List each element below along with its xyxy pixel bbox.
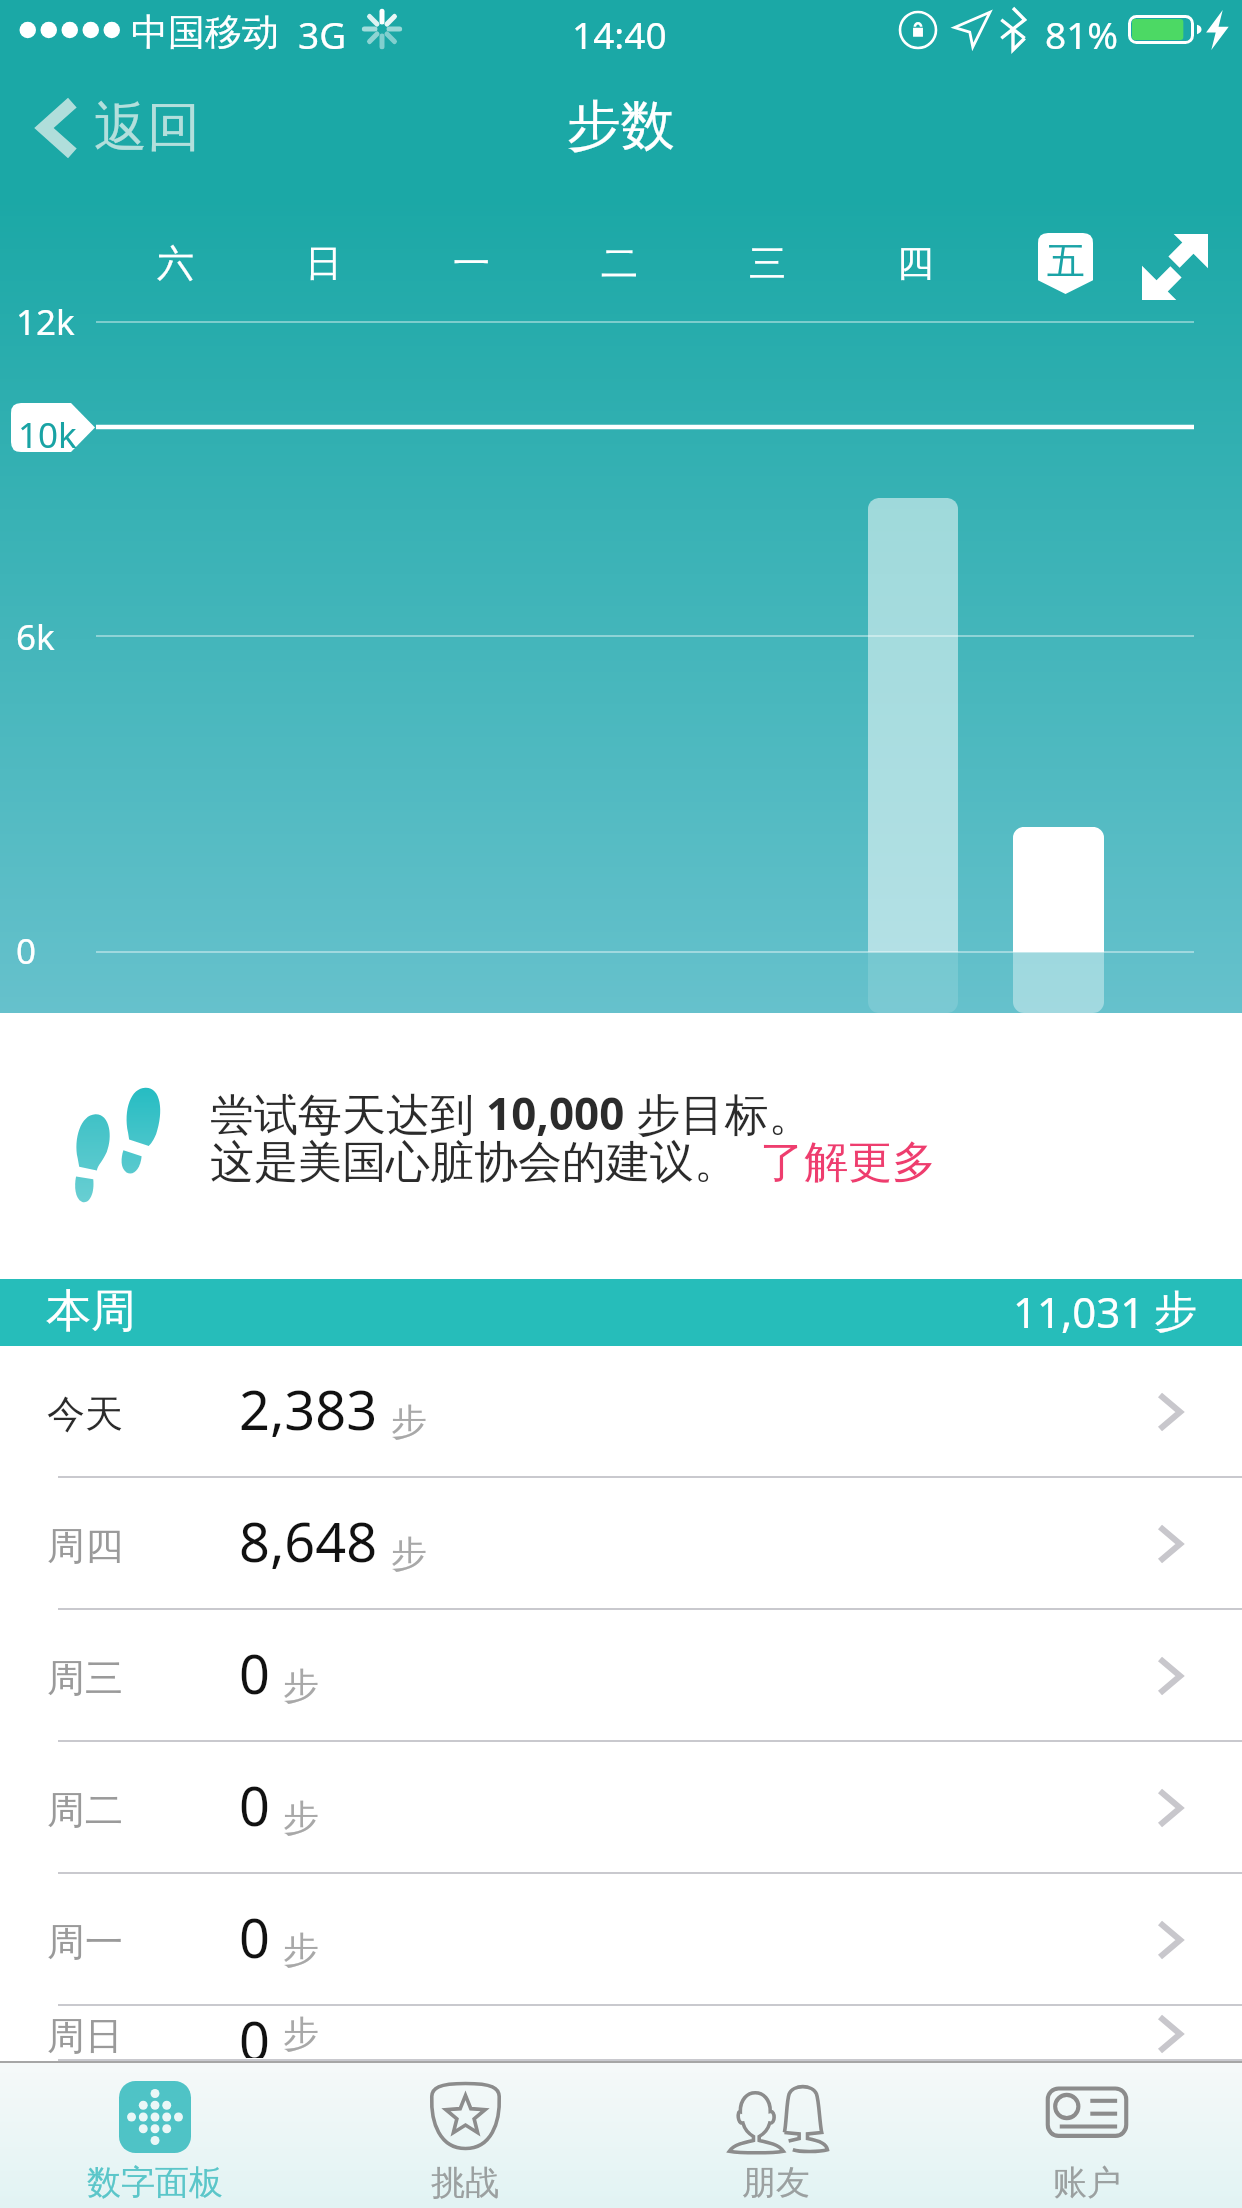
- staticText: 3G: [298, 9, 347, 59]
- staticText: 0: [239, 2003, 270, 2058]
- staticText: 步: [283, 1927, 319, 1972]
- staticText: 10k: [18, 411, 77, 459]
- staticText: 五: [1047, 237, 1085, 285]
- staticText: 步: [283, 1663, 319, 1708]
- button[interactable]: 周日: [0, 2006, 1242, 2061]
- staticText: 0: [16, 927, 37, 975]
- button[interactable]: 周一: [0, 1874, 1242, 2006]
- staticText: 四: [897, 240, 934, 287]
- staticText: 步数: [567, 92, 675, 160]
- button[interactable]: 日: [249, 219, 397, 307]
- staticText: 二: [601, 240, 638, 287]
- button[interactable]: 账户: [931, 2061, 1242, 2208]
- staticText: 六: [157, 240, 194, 287]
- staticText: 了解更多: [760, 1135, 936, 1190]
- button[interactable]: Expand chart: [1140, 232, 1210, 302]
- staticText: 步目标。: [625, 1083, 813, 1143]
- button[interactable]: 周二: [0, 1742, 1242, 1874]
- staticText: 6k: [16, 613, 55, 661]
- staticText: 步: [391, 1531, 427, 1576]
- staticText: 日: [305, 240, 342, 287]
- staticText: 步: [283, 2011, 319, 2056]
- staticText: 返回: [94, 94, 200, 161]
- button[interactable]: 一: [397, 219, 545, 307]
- button[interactable]: 了解更多: [760, 1135, 936, 1190]
- button[interactable]: 数字面板: [0, 2061, 310, 2208]
- button[interactable]: 返回: [18, 84, 224, 171]
- button[interactable]: 挑战: [310, 2061, 620, 2208]
- button[interactable]: 五: [1038, 233, 1093, 294]
- staticText: 0: [239, 1900, 270, 1974]
- staticText: 81%: [1045, 9, 1119, 59]
- staticText: 周四: [47, 1522, 123, 1570]
- staticText: 12k: [16, 298, 75, 346]
- staticText: 今天: [47, 1390, 123, 1438]
- staticText: 2,383: [239, 1372, 378, 1446]
- button[interactable]: 二: [545, 219, 693, 307]
- staticText: 周一: [47, 1918, 123, 1966]
- staticText: 本周: [46, 1283, 136, 1340]
- staticText: 步: [1154, 1285, 1197, 1339]
- staticText: 10,000: [486, 1083, 625, 1143]
- staticText: 尝试每天达到: [210, 1083, 486, 1143]
- button[interactable]: 周四: [0, 1478, 1242, 1610]
- staticText: 中国移动: [131, 9, 279, 56]
- staticText: 步: [283, 1795, 319, 1840]
- staticText: 8,648: [239, 1504, 378, 1578]
- staticText: 周三: [47, 1654, 123, 1702]
- staticText: 朋友: [742, 2161, 810, 2204]
- button[interactable]: 朋友: [620, 2061, 931, 2208]
- staticText: 14:40: [572, 9, 667, 59]
- staticText: 0: [239, 1768, 270, 1842]
- staticText: 挑战: [431, 2161, 499, 2204]
- button[interactable]: 周三: [0, 1610, 1242, 1742]
- button[interactable]: 六: [101, 219, 249, 307]
- staticText: 11,031: [1013, 1283, 1145, 1340]
- staticText: 一: [453, 240, 490, 287]
- staticText: 数字面板: [87, 2161, 223, 2204]
- button[interactable]: 今天: [0, 1346, 1242, 1478]
- staticText: 0: [239, 1636, 270, 1710]
- staticText: 账户: [1053, 2161, 1121, 2204]
- button[interactable]: 四: [841, 219, 989, 307]
- staticText: 周二: [47, 1786, 123, 1834]
- staticText: 这是美国心脏协会的建议。: [210, 1135, 738, 1190]
- staticText: 三: [749, 240, 786, 287]
- button[interactable]: 三: [693, 219, 841, 307]
- staticText: 步: [391, 1399, 427, 1444]
- staticText: 周日: [47, 2012, 123, 2060]
